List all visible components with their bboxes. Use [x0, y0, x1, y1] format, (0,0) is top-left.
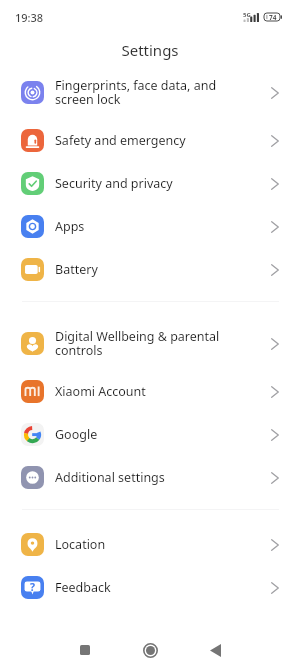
button[interactable]: Recents — [55, 631, 115, 668]
button[interactable]: Location — [0, 523, 300, 566]
button[interactable]: Google — [0, 413, 300, 456]
button[interactable]: Apps — [0, 205, 300, 248]
staticText: 74 — [269, 13, 277, 21]
button[interactable]: Xiaomi Account — [0, 370, 300, 413]
button[interactable]: Fingerprints, face data, and screen lock — [0, 68, 300, 117]
staticText: Apps — [55, 218, 271, 235]
button[interactable]: Additional settings — [0, 456, 300, 499]
staticText: Settings — [121, 40, 179, 60]
staticText: Security and privacy — [55, 175, 271, 192]
button[interactable]: Back — [185, 631, 245, 668]
button[interactable]: ? — [0, 566, 300, 609]
staticText: Digital Wellbeing & parental controls — [55, 328, 271, 359]
button[interactable]: Battery — [0, 248, 300, 291]
staticText: Feedback — [55, 579, 271, 596]
staticText: Safety and emergency — [55, 132, 271, 149]
staticText: ? — [30, 580, 36, 594]
button[interactable]: Home — [120, 631, 180, 668]
staticText: Battery — [55, 261, 271, 278]
staticText: Google — [55, 426, 271, 443]
staticText: Additional settings — [55, 469, 271, 486]
button[interactable]: Safety and emergency — [0, 119, 300, 162]
button[interactable]: Digital Wellbeing & parental controls — [0, 319, 300, 368]
staticText: Fingerprints, face data, and screen lock — [55, 77, 271, 108]
staticText: Location — [55, 536, 271, 553]
staticText: 5G — [243, 11, 251, 19]
staticText: Xiaomi Account — [55, 383, 271, 400]
staticText: 19:38 — [15, 10, 44, 25]
button[interactable]: Security and privacy — [0, 162, 300, 205]
